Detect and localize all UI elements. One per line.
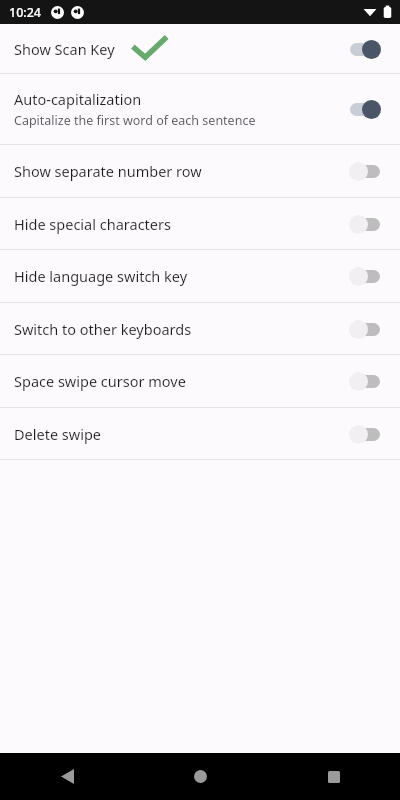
button[interactable]: Switch off bbox=[349, 160, 381, 182]
staticText: Show Scan Key bbox=[14, 39, 115, 59]
button[interactable]: Home bbox=[134, 753, 267, 800]
button[interactable]: Switch on bbox=[349, 38, 381, 60]
button[interactable]: Recent apps bbox=[267, 753, 400, 800]
staticText: Hide language switch key bbox=[14, 266, 188, 286]
staticText: Space swipe cursor move bbox=[14, 371, 186, 391]
button[interactable]: Show separate number row bbox=[0, 145, 400, 197]
button[interactable]: Delete swipe bbox=[0, 408, 400, 459]
button[interactable]: Switch on bbox=[349, 98, 381, 120]
staticText: Show separate number row bbox=[14, 161, 202, 181]
button[interactable]: Switch off bbox=[349, 265, 381, 287]
staticText: Capitalize the first word of each senten… bbox=[14, 112, 256, 129]
staticText: Switch to other keyboards bbox=[14, 319, 192, 339]
button[interactable]: Switch off bbox=[349, 370, 381, 392]
button[interactable]: Switch off bbox=[349, 318, 381, 340]
button[interactable]: Switch off bbox=[349, 213, 381, 235]
staticText: 10:24 bbox=[9, 4, 42, 21]
button[interactable]: Switch off bbox=[349, 423, 381, 445]
staticText: Delete swipe bbox=[14, 424, 102, 444]
button[interactable]: Hide special characters bbox=[0, 198, 400, 249]
button[interactable]: Auto-capitalization bbox=[0, 74, 400, 144]
button[interactable]: Space swipe cursor move bbox=[0, 355, 400, 407]
button[interactable]: Switch to other keyboards bbox=[0, 303, 400, 354]
staticText: Auto-capitalization bbox=[14, 89, 142, 109]
staticText: Hide special characters bbox=[14, 214, 171, 234]
button[interactable]: Back bbox=[0, 753, 134, 800]
button[interactable]: Show Scan Key bbox=[0, 24, 400, 73]
button[interactable]: Hide language switch key bbox=[0, 250, 400, 302]
